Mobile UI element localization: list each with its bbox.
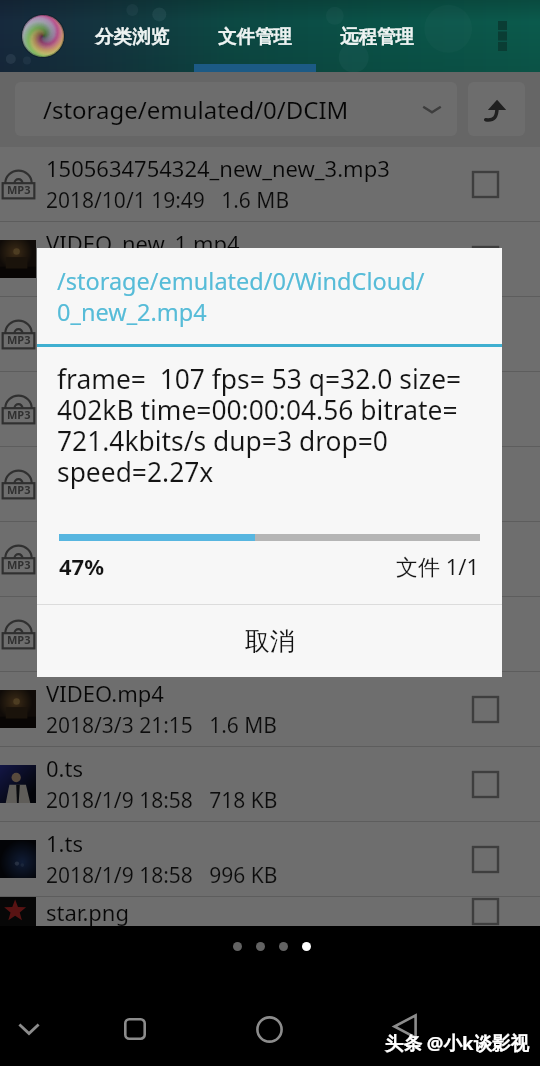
button[interactable]: Hide navigation bar bbox=[0, 1012, 58, 1046]
button[interactable]: Select 1505634754324_new_new.mp3 bbox=[431, 447, 540, 521]
button[interactable]: 0.ts bbox=[0, 747, 540, 822]
staticText: 1505634754324_new_new_1.mp3 bbox=[46, 378, 390, 408]
staticText: 2018/10/1 19:49 1.6 MB bbox=[46, 186, 290, 215]
button[interactable]: VIDEO_new_1.mp4 bbox=[0, 222, 540, 297]
button[interactable]: Select 1.ts bbox=[431, 822, 540, 896]
staticText: 2018/10/1 19:49 1.6 MB bbox=[46, 636, 290, 665]
button[interactable]: Select VIDEO_new_1.mp4 bbox=[431, 222, 540, 296]
staticText: 文件 1/1 bbox=[396, 551, 480, 581]
staticText: 2018/3/3 21:15 1.6 MB bbox=[46, 261, 278, 290]
staticText: 远程管理 bbox=[340, 25, 414, 48]
button[interactable]: MP3 bbox=[0, 147, 540, 222]
button[interactable]: Select 1505634754324.mp3 bbox=[431, 597, 540, 671]
button[interactable]: 分类浏览 bbox=[93, 15, 171, 58]
staticText: MP3 bbox=[7, 332, 31, 347]
button[interactable]: Select star.png bbox=[431, 897, 540, 926]
staticText: frame= 107 fps= 53 q=32.0 size= 402kB ti… bbox=[57, 361, 462, 490]
staticText: 2018/1/9 18:58 718 KB bbox=[46, 786, 278, 815]
staticText: MP3 bbox=[7, 557, 31, 572]
staticText: star.png bbox=[46, 897, 129, 926]
button[interactable]: Select 1505634754324_new.mp3 bbox=[431, 522, 540, 596]
staticText: 1505634754324.mp3 bbox=[46, 603, 263, 633]
staticText: 2018/1/9 18:58 996 KB bbox=[46, 861, 278, 890]
button[interactable]: MP3 bbox=[0, 597, 540, 672]
button[interactable]: MP3 bbox=[0, 372, 540, 447]
staticText: /storage/emulated/0/DCIM bbox=[43, 93, 349, 126]
staticText: VIDEO.mp4 bbox=[46, 678, 164, 708]
button[interactable]: Back bbox=[379, 1003, 431, 1049]
button[interactable]: MP3 bbox=[0, 447, 540, 522]
button[interactable]: 1.ts bbox=[0, 822, 540, 897]
staticText: MP3 bbox=[7, 482, 31, 497]
staticText: 头条 @小k谈影视 bbox=[385, 1030, 529, 1055]
button[interactable]: Select 1505634754324_new_new_1.mp3 bbox=[431, 372, 540, 446]
button[interactable]: /storage/emulated/0/DCIM bbox=[15, 82, 457, 136]
staticText: 2018/10/1 19:49 1.6 MB bbox=[46, 561, 290, 590]
staticText: 1505634754324_new_new.mp3 bbox=[46, 453, 367, 483]
staticText: MP3 bbox=[7, 182, 31, 197]
button[interactable]: 文件管理 bbox=[216, 15, 294, 58]
staticText: 2018/10/1 19:49 1.6 MB bbox=[46, 411, 290, 440]
button[interactable]: Select 1505634754324_new_new_3.mp3 bbox=[431, 147, 540, 221]
staticText: 47% bbox=[59, 551, 105, 581]
staticText: 1505634754324_new.mp3 bbox=[46, 528, 314, 558]
staticText: MP3 bbox=[7, 632, 31, 647]
staticText: 1505634754324_new_new_2.mp3 bbox=[46, 303, 390, 333]
button[interactable]: Home bbox=[240, 1005, 298, 1053]
staticText: /storage/emulated/0/WindCloud/ 0_new_2.m… bbox=[57, 265, 425, 328]
button[interactable]: star.png bbox=[0, 897, 540, 926]
staticText: 1505634754324_new_new_3.mp3 bbox=[46, 153, 390, 183]
staticText: 取消 bbox=[245, 626, 295, 657]
staticText: 1.ts bbox=[46, 828, 83, 858]
button[interactable]: VIDEO.mp4 bbox=[0, 672, 540, 747]
staticText: 分类浏览 bbox=[95, 25, 169, 48]
staticText: 2018/10/1 19:49 1.6 MB bbox=[46, 336, 290, 365]
button[interactable]: MP3 bbox=[0, 522, 540, 597]
button[interactable]: Recents bbox=[106, 1007, 164, 1051]
staticText: VIDEO_new_1.mp4 bbox=[46, 228, 240, 258]
staticText: 0.ts bbox=[46, 753, 83, 783]
button[interactable]: Select 1505634754324_new_new_2.mp3 bbox=[431, 297, 540, 371]
staticText: MP3 bbox=[7, 407, 31, 422]
staticText: 2018/3/3 21:15 1.6 MB bbox=[46, 711, 278, 740]
staticText: 文件管理 bbox=[218, 25, 292, 48]
button[interactable]: Select 0.ts bbox=[431, 747, 540, 821]
button[interactable]: MP3 bbox=[0, 297, 540, 372]
button[interactable]: Select VIDEO.mp4 bbox=[431, 672, 540, 746]
button[interactable]: Up one level bbox=[468, 82, 525, 136]
button[interactable]: More options bbox=[476, 0, 528, 72]
staticText: 2018/10/1 19:49 1.6 MB bbox=[46, 486, 290, 515]
button[interactable]: 远程管理 bbox=[338, 15, 416, 58]
button[interactable]: 取消 bbox=[37, 605, 502, 677]
